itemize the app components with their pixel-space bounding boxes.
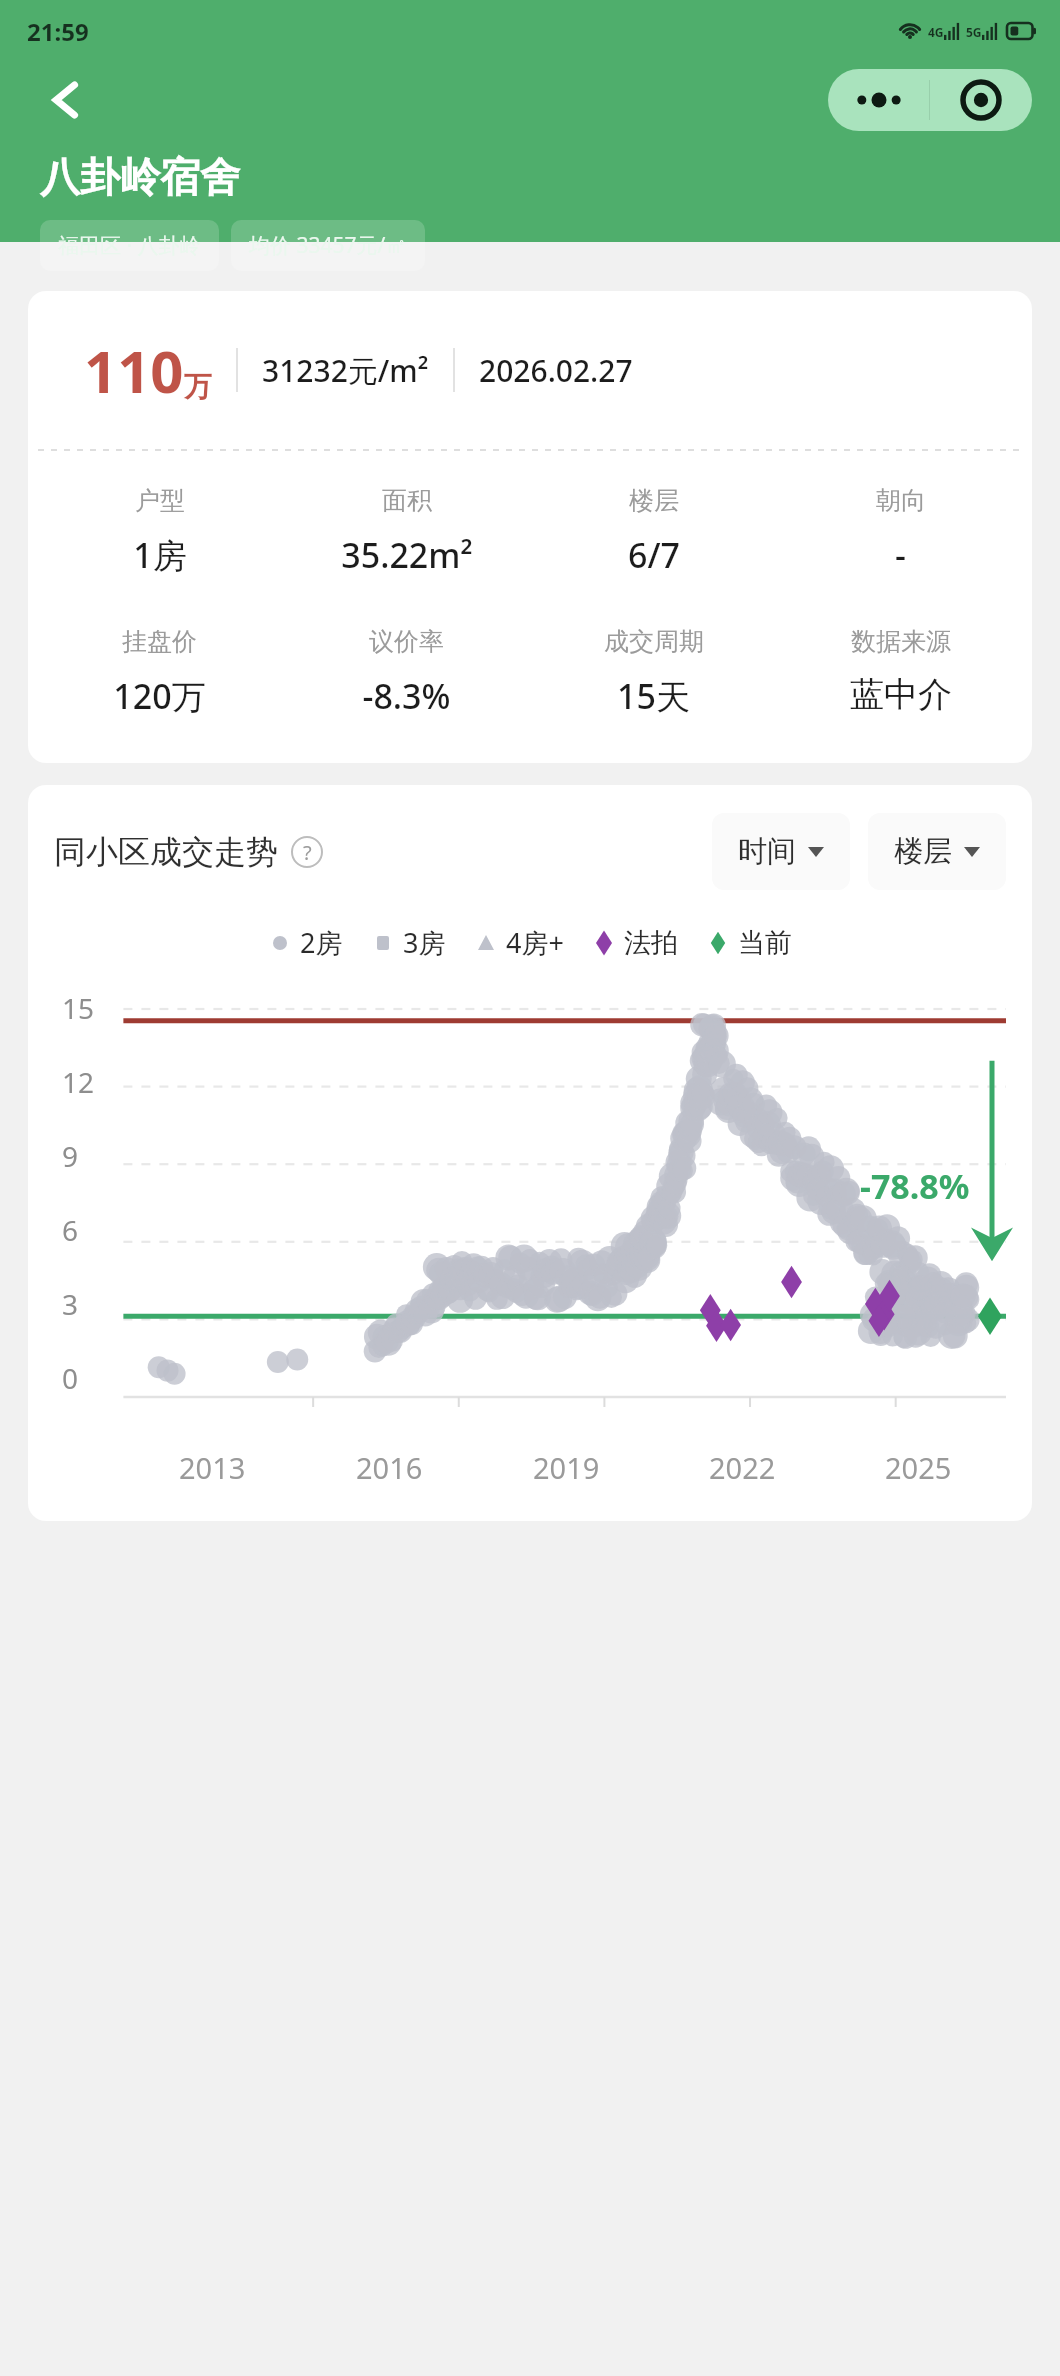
staticText: 2025 (885, 1448, 952, 1487)
staticText: 3 (62, 1285, 79, 1323)
staticText: 万 (184, 369, 212, 404)
button[interactable]: Close (930, 69, 1032, 131)
staticText: 6 (62, 1211, 79, 1249)
staticText: 成交周期 (604, 626, 704, 657)
staticText: 时间 (738, 833, 796, 870)
staticText: 0 (62, 1359, 79, 1397)
staticText: 31232元/m² (262, 350, 429, 391)
staticText: 9 (62, 1137, 79, 1175)
staticText: 蓝中介 (850, 673, 952, 716)
staticText: 2013 (179, 1448, 246, 1487)
staticText: 朝向 (876, 485, 926, 516)
staticText: 15 (62, 989, 95, 1027)
staticText: -8.3% (362, 673, 451, 719)
staticText: 同小区成交走势 (54, 832, 278, 872)
staticText: 12 (62, 1063, 95, 1101)
staticText: 2016 (356, 1448, 423, 1487)
staticText: 1房 (133, 532, 187, 578)
staticText: 4G (928, 24, 944, 40)
button[interactable]: 均价 33457元/㎡ (231, 220, 425, 271)
staticText: 2019 (533, 1448, 600, 1487)
staticText: 4房+ (506, 924, 564, 961)
button[interactable]: Back (40, 73, 94, 127)
staticText: 面积 (382, 485, 432, 516)
staticText: ? (303, 839, 312, 866)
staticText: 挂盘价 (122, 626, 197, 657)
staticText: 2房 (300, 924, 343, 961)
staticText: 楼层 (894, 833, 952, 870)
staticText: 3房 (403, 924, 446, 961)
staticText: 21:59 (27, 15, 89, 48)
staticText: -78.8% (860, 1163, 970, 1209)
staticText: 6/7 (628, 532, 680, 578)
staticText: 八卦岭宿舍 (40, 152, 240, 202)
staticText: 议价率 (369, 626, 444, 657)
staticText: 楼层 (629, 485, 679, 516)
button[interactable]: Help (290, 835, 324, 869)
button[interactable]: 福田区 · 八卦岭 (40, 220, 219, 271)
button[interactable]: More (828, 69, 929, 131)
staticText: 当前 (738, 926, 792, 960)
button[interactable]: 时间 (712, 813, 850, 890)
staticText: 数据来源 (851, 626, 951, 657)
staticText: 福田区 · 八卦岭 (58, 231, 201, 260)
staticText: 均价 33457元/㎡ (249, 231, 407, 260)
staticText: 法拍 (624, 926, 678, 960)
staticText: - (895, 532, 906, 578)
staticText: 120万 (113, 673, 206, 719)
staticText: 110 (84, 331, 184, 410)
staticText: 35.22m² (341, 532, 473, 578)
staticText: 5G (966, 24, 982, 40)
staticText: 2022 (709, 1448, 776, 1487)
button[interactable]: 楼层 (868, 813, 1006, 890)
staticText: 户型 (135, 485, 185, 516)
staticText: 15天 (617, 673, 690, 719)
staticText: 2026.02.27 (479, 350, 633, 391)
